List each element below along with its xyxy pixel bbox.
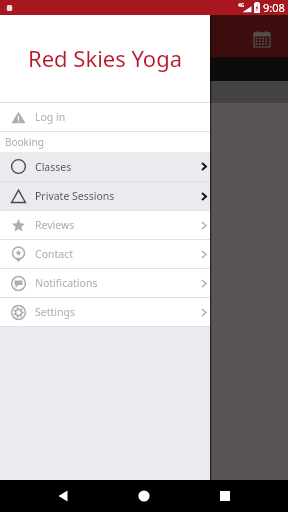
staticText: Settings — [35, 305, 75, 319]
staticText: Reviews — [35, 218, 75, 232]
button[interactable]: Notifications — [0, 269, 210, 297]
button[interactable]: Private Sessions — [0, 182, 210, 210]
staticText: 9:08 — [263, 0, 285, 15]
button[interactable]: Home — [130, 482, 158, 510]
button[interactable]: Classes — [0, 152, 210, 181]
button[interactable]: Recents — [211, 482, 239, 510]
button[interactable]: Log in — [0, 103, 210, 131]
button[interactable]: Settings — [0, 298, 210, 326]
staticText: Contact — [35, 247, 73, 261]
staticText: Classes — [35, 160, 72, 174]
staticText: Booking — [5, 135, 44, 149]
staticText: Notifications — [35, 276, 98, 290]
button[interactable]: Contact — [0, 240, 210, 268]
button[interactable]: Reviews — [0, 211, 210, 239]
staticText: 4G — [238, 2, 245, 9]
button[interactable]: Calendar — [253, 30, 271, 48]
staticText: Private Sessions — [35, 189, 115, 203]
staticText: Red Skies Yoga — [28, 43, 183, 73]
button[interactable]: Back — [49, 482, 77, 510]
staticText: Log in — [35, 110, 66, 124]
